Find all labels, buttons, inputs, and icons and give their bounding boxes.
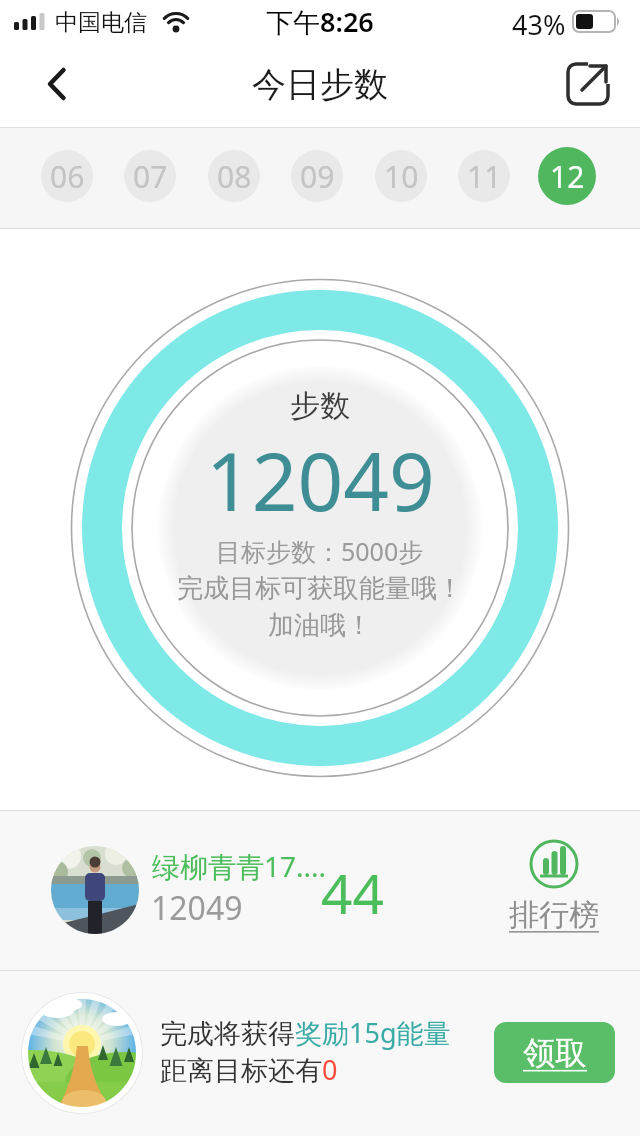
button[interactable]: 10 — [375, 150, 427, 202]
button[interactable]: 12 — [538, 147, 596, 205]
button[interactable] — [558, 54, 618, 114]
staticText: 44 — [321, 855, 384, 930]
staticText: 11 — [467, 156, 502, 197]
staticText: 10 — [384, 156, 419, 197]
staticText: 下午8:26 — [266, 3, 374, 40]
button[interactable]: 06 — [41, 150, 93, 202]
button[interactable]: 11 — [458, 150, 510, 202]
staticText: 领取 — [523, 1033, 587, 1073]
staticText: 距离目标还有0 — [160, 1051, 338, 1088]
button[interactable] — [0, 971, 640, 1136]
staticText: 12049 — [206, 425, 435, 534]
staticText: 06 — [50, 156, 85, 197]
button[interactable]: 08 — [208, 150, 260, 202]
staticText: 目标步数：5000步 — [216, 534, 424, 568]
button[interactable] — [30, 60, 80, 110]
staticText: 08 — [217, 156, 252, 197]
staticText: 09 — [300, 156, 335, 197]
staticText: 中国电信 — [55, 8, 147, 37]
staticText: 完成目标可获取能量哦！ — [177, 572, 463, 605]
button[interactable] — [0, 811, 640, 970]
button[interactable]: 领取 — [494, 1022, 615, 1083]
staticText: 绿柳青青17.... — [152, 847, 327, 885]
staticText: 43% — [512, 6, 566, 38]
button[interactable]: 07 — [124, 150, 176, 202]
staticText: 步数 — [290, 387, 350, 425]
staticText: 今日步数 — [252, 63, 388, 106]
staticText: 加油哦！ — [268, 609, 372, 642]
button[interactable]: 09 — [291, 150, 343, 202]
staticText: 12 — [550, 156, 585, 197]
staticText: 完成将获得奖励15g能量 — [160, 1014, 451, 1051]
button[interactable]: 排行榜 — [506, 836, 602, 934]
staticText: 排行榜 — [509, 896, 599, 934]
staticText: 07 — [133, 156, 168, 197]
staticText: 12049 — [151, 886, 243, 930]
